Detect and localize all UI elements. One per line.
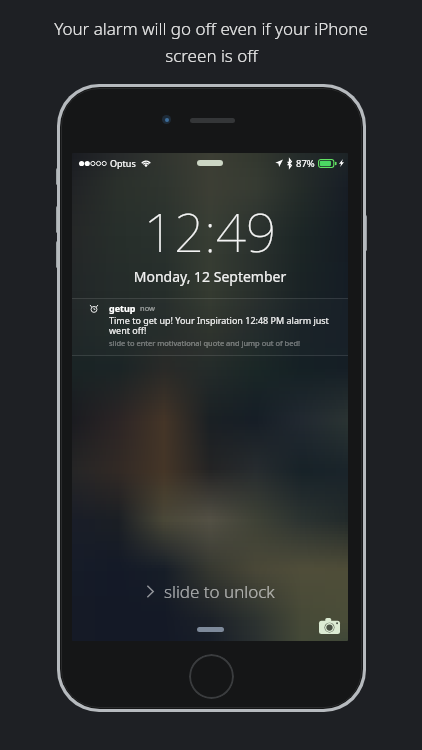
staticText: slide to enter motivational quote and ju… xyxy=(109,338,301,348)
staticText: screen is off xyxy=(165,44,258,67)
button[interactable]: getup xyxy=(72,298,348,356)
staticText: Your alarm will go off even if your iPho… xyxy=(54,17,368,40)
staticText: 87% xyxy=(296,157,315,170)
staticText: now xyxy=(140,303,155,313)
staticText: Optus xyxy=(110,157,136,169)
staticText: getup xyxy=(109,302,136,314)
staticText: 12:49 xyxy=(72,195,348,267)
button[interactable]: Camera xyxy=(317,616,341,636)
staticText: Time to get up! Your Inspiration 12:48 P… xyxy=(109,314,329,337)
staticText: Monday, 12 September xyxy=(72,267,348,286)
staticText: slide to unlock xyxy=(164,580,275,603)
